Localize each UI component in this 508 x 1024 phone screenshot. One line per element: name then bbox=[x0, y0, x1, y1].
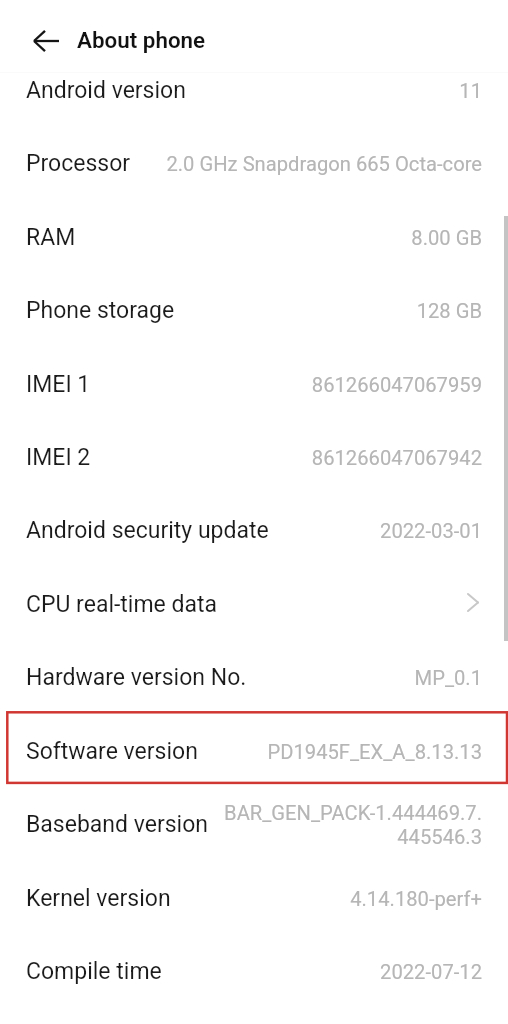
button[interactable]: RAM bbox=[0, 201, 508, 274]
button[interactable]: Android security update bbox=[0, 494, 508, 567]
staticText: 2022-07-12 bbox=[380, 960, 482, 984]
button[interactable]: Back bbox=[26, 21, 66, 61]
staticText: 8.00 GB bbox=[411, 226, 482, 250]
staticText: RAM bbox=[26, 224, 76, 251]
staticText: About phone bbox=[77, 27, 206, 53]
staticText: Baseband version bbox=[26, 811, 208, 838]
staticText: 861266047067959 bbox=[311, 373, 482, 397]
staticText: BAR_GEN_PACK-1.444469.7. 445546.3 bbox=[224, 801, 482, 849]
button[interactable]: Android version bbox=[0, 54, 508, 127]
button[interactable]: Baseband version bbox=[0, 788, 508, 861]
staticText: Android security update bbox=[26, 517, 269, 544]
button[interactable]: Phone storage bbox=[0, 274, 508, 347]
staticText: CPU real-time data bbox=[26, 591, 218, 618]
button[interactable]: Hardware version No. bbox=[0, 641, 508, 714]
staticText: 4.14.180-perf+ bbox=[350, 887, 482, 911]
staticText: Phone storage bbox=[26, 297, 175, 324]
staticText: MP_0.1 bbox=[414, 666, 482, 690]
staticText: 2.0 GHz Snapdragon 665 Octa-core bbox=[166, 152, 482, 176]
staticText: Kernel version bbox=[26, 885, 171, 912]
other: Open CPU real-time data bbox=[467, 593, 479, 612]
staticText: Software version bbox=[26, 738, 198, 765]
staticText: 128 GB bbox=[416, 299, 482, 323]
staticText: IMEI 2 bbox=[26, 444, 91, 471]
staticText: 861266047067942 bbox=[311, 446, 482, 470]
staticText: Android version bbox=[26, 77, 186, 104]
button[interactable]: IMEI 1 bbox=[0, 348, 508, 421]
staticText: 2022-03-01 bbox=[380, 519, 482, 543]
button[interactable]: IMEI 2 bbox=[0, 421, 508, 494]
staticText: 11 bbox=[459, 79, 482, 103]
staticText: PD1945F_EX_A_8.13.13 bbox=[267, 740, 482, 764]
button[interactable]: Processor bbox=[0, 127, 508, 200]
staticText: Hardware version No. bbox=[26, 664, 247, 691]
staticText: IMEI 1 bbox=[26, 371, 91, 398]
button[interactable]: CPU real-time data bbox=[0, 568, 508, 641]
staticText: Processor bbox=[26, 150, 131, 177]
button[interactable]: Kernel version bbox=[0, 862, 508, 935]
staticText: Compile time bbox=[26, 958, 162, 985]
button[interactable]: Software version bbox=[0, 715, 508, 788]
button[interactable]: Compile time bbox=[0, 935, 508, 1008]
